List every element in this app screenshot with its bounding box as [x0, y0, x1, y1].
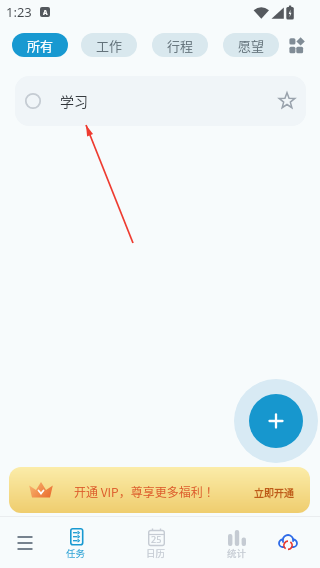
button[interactable]: 学习: [15, 76, 306, 126]
staticText: 学习: [60, 91, 88, 111]
button[interactable]: 愿望: [223, 33, 279, 57]
staticText: 25: [151, 533, 162, 545]
button[interactable]: [289, 37, 305, 54]
button[interactable]: [249, 394, 303, 448]
staticText: 愿望: [238, 36, 265, 55]
staticText: A: [43, 8, 48, 17]
button[interactable]: [278, 533, 298, 551]
staticText: 所有: [27, 36, 54, 55]
button[interactable]: [136, 524, 176, 560]
button[interactable]: [216, 524, 256, 560]
button[interactable]: 行程: [152, 33, 208, 57]
button[interactable]: 所有: [12, 33, 68, 57]
button[interactable]: 开通 VIP，尊享更多福利！: [9, 467, 310, 513]
staticText: 1:23: [6, 3, 32, 21]
button[interactable]: [56, 524, 96, 560]
button[interactable]: 工作: [81, 33, 137, 57]
staticText: 日历: [146, 546, 166, 559]
staticText: 行程: [167, 36, 194, 55]
staticText: 工作: [96, 36, 123, 55]
button[interactable]: [17, 535, 33, 551]
staticText: 任务: [66, 546, 86, 559]
staticText: 统计: [227, 546, 247, 559]
staticText: 立即开通: [254, 485, 294, 499]
staticText: 开通 VIP，尊享更多福利！: [74, 483, 215, 500]
